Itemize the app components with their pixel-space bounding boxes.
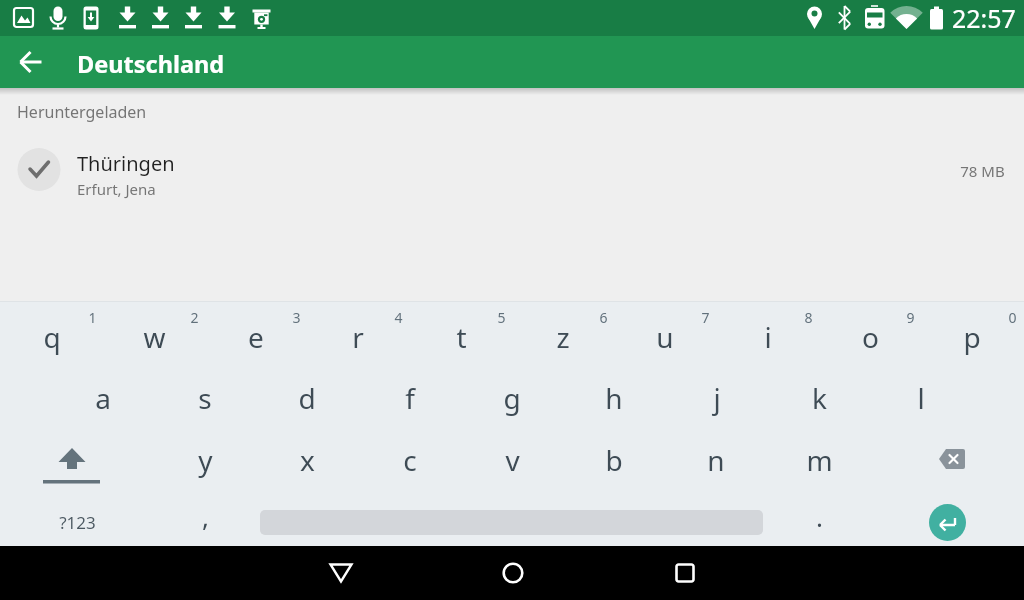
button[interactable]: q [2,306,102,368]
staticText: 4 [394,308,403,327]
staticText: f [405,379,415,417]
button[interactable]: e [206,306,306,368]
staticText: i [764,318,772,356]
staticText: h [605,379,623,417]
staticText: w [143,318,166,356]
staticText: 7 [701,308,710,327]
staticText: q [43,318,61,356]
staticText: 3 [292,308,301,327]
staticText: r [352,318,364,356]
staticText: z [556,318,570,356]
button[interactable]: p [922,306,1022,368]
button[interactable]: d [257,367,357,429]
button[interactable]: z [513,306,613,368]
staticText: 9 [906,308,915,327]
button[interactable] [22,429,122,491]
staticText: j [713,379,721,417]
button[interactable]: k [769,367,869,429]
staticText: p [963,318,981,356]
staticText: 22:57 [952,1,1016,35]
staticText: x [300,441,315,479]
staticText: y [198,441,213,479]
staticText: d [298,379,316,417]
staticText: 1 [88,308,97,327]
button[interactable]: t [411,306,511,368]
button[interactable] [8,40,54,84]
staticText: Erfurt, Jena [77,179,156,199]
button[interactable] [479,550,547,596]
button[interactable]: o [820,306,920,368]
staticText: Deutschland [77,48,225,80]
staticText: Heruntergeladen [17,101,147,123]
button[interactable]: c [360,429,460,491]
staticText: v [505,441,520,479]
button[interactable]: a [53,367,153,429]
button[interactable]: f [360,367,460,429]
staticText: u [656,318,674,356]
button[interactable] [929,504,966,541]
staticText: t [456,318,467,356]
staticText: l [917,379,925,417]
button[interactable]: x [257,429,357,491]
staticText: . [816,499,823,534]
button[interactable]: g [462,367,562,429]
staticText: b [605,441,623,479]
button[interactable] [901,429,1003,491]
button[interactable]: m [769,429,869,491]
button[interactable]: ?123 [22,494,132,550]
staticText: o [862,318,879,356]
staticText: 6 [599,308,608,327]
button[interactable]: w [104,306,204,368]
staticText: s [198,379,212,417]
button[interactable] [0,140,1024,200]
button[interactable]: y [155,429,255,491]
button[interactable]: v [462,429,562,491]
button[interactable]: j [667,367,767,429]
staticText: 8 [804,308,813,327]
staticText: ?123 [59,511,96,534]
button[interactable]: r [308,306,408,368]
staticText: e [248,318,264,356]
button[interactable]: h [564,367,664,429]
staticText: c [403,441,417,479]
staticText: Thüringen [77,150,175,177]
button[interactable]: s [155,367,255,429]
staticText: n [707,441,725,479]
button[interactable]: . [789,488,849,544]
button[interactable] [651,550,719,596]
button[interactable]: , [175,488,235,544]
staticText: a [95,379,111,417]
staticText: 2 [190,308,199,327]
button[interactable]: l [871,367,971,429]
button[interactable]: i [718,306,818,368]
button[interactable]: n [666,429,766,491]
staticText: m [806,441,833,479]
button[interactable]: b [564,429,664,491]
staticText: k [812,379,827,417]
staticText: , [202,499,209,534]
button[interactable] [307,550,375,596]
staticText: g [503,379,521,417]
staticText: 78 MB [960,161,1005,181]
button[interactable]: u [615,306,715,368]
staticText: 0 [1008,308,1017,327]
staticText: 5 [497,308,506,327]
